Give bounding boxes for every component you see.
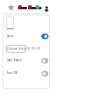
button[interactable]: Toggle off	[41, 58, 48, 63]
button[interactable]: Extension	[18, 5, 27, 9]
button[interactable]: Profile	[45, 5, 48, 10]
staticText: Event	[6, 34, 13, 38]
button[interactable]: Choose Files	[6, 45, 25, 52]
button[interactable]: Toggle off	[41, 71, 48, 76]
button[interactable]: Toggle on	[41, 34, 48, 39]
button[interactable]: Extension	[28, 5, 37, 9]
staticText: Turn Off	[6, 71, 17, 75]
staticText: Date Based	[6, 58, 21, 62]
button[interactable]: Bookmark	[7, 4, 14, 11]
staticText: Choose Files	[7, 47, 25, 50]
button[interactable]: Extension	[35, 5, 41, 9]
staticText: No file ch	[26, 47, 40, 50]
